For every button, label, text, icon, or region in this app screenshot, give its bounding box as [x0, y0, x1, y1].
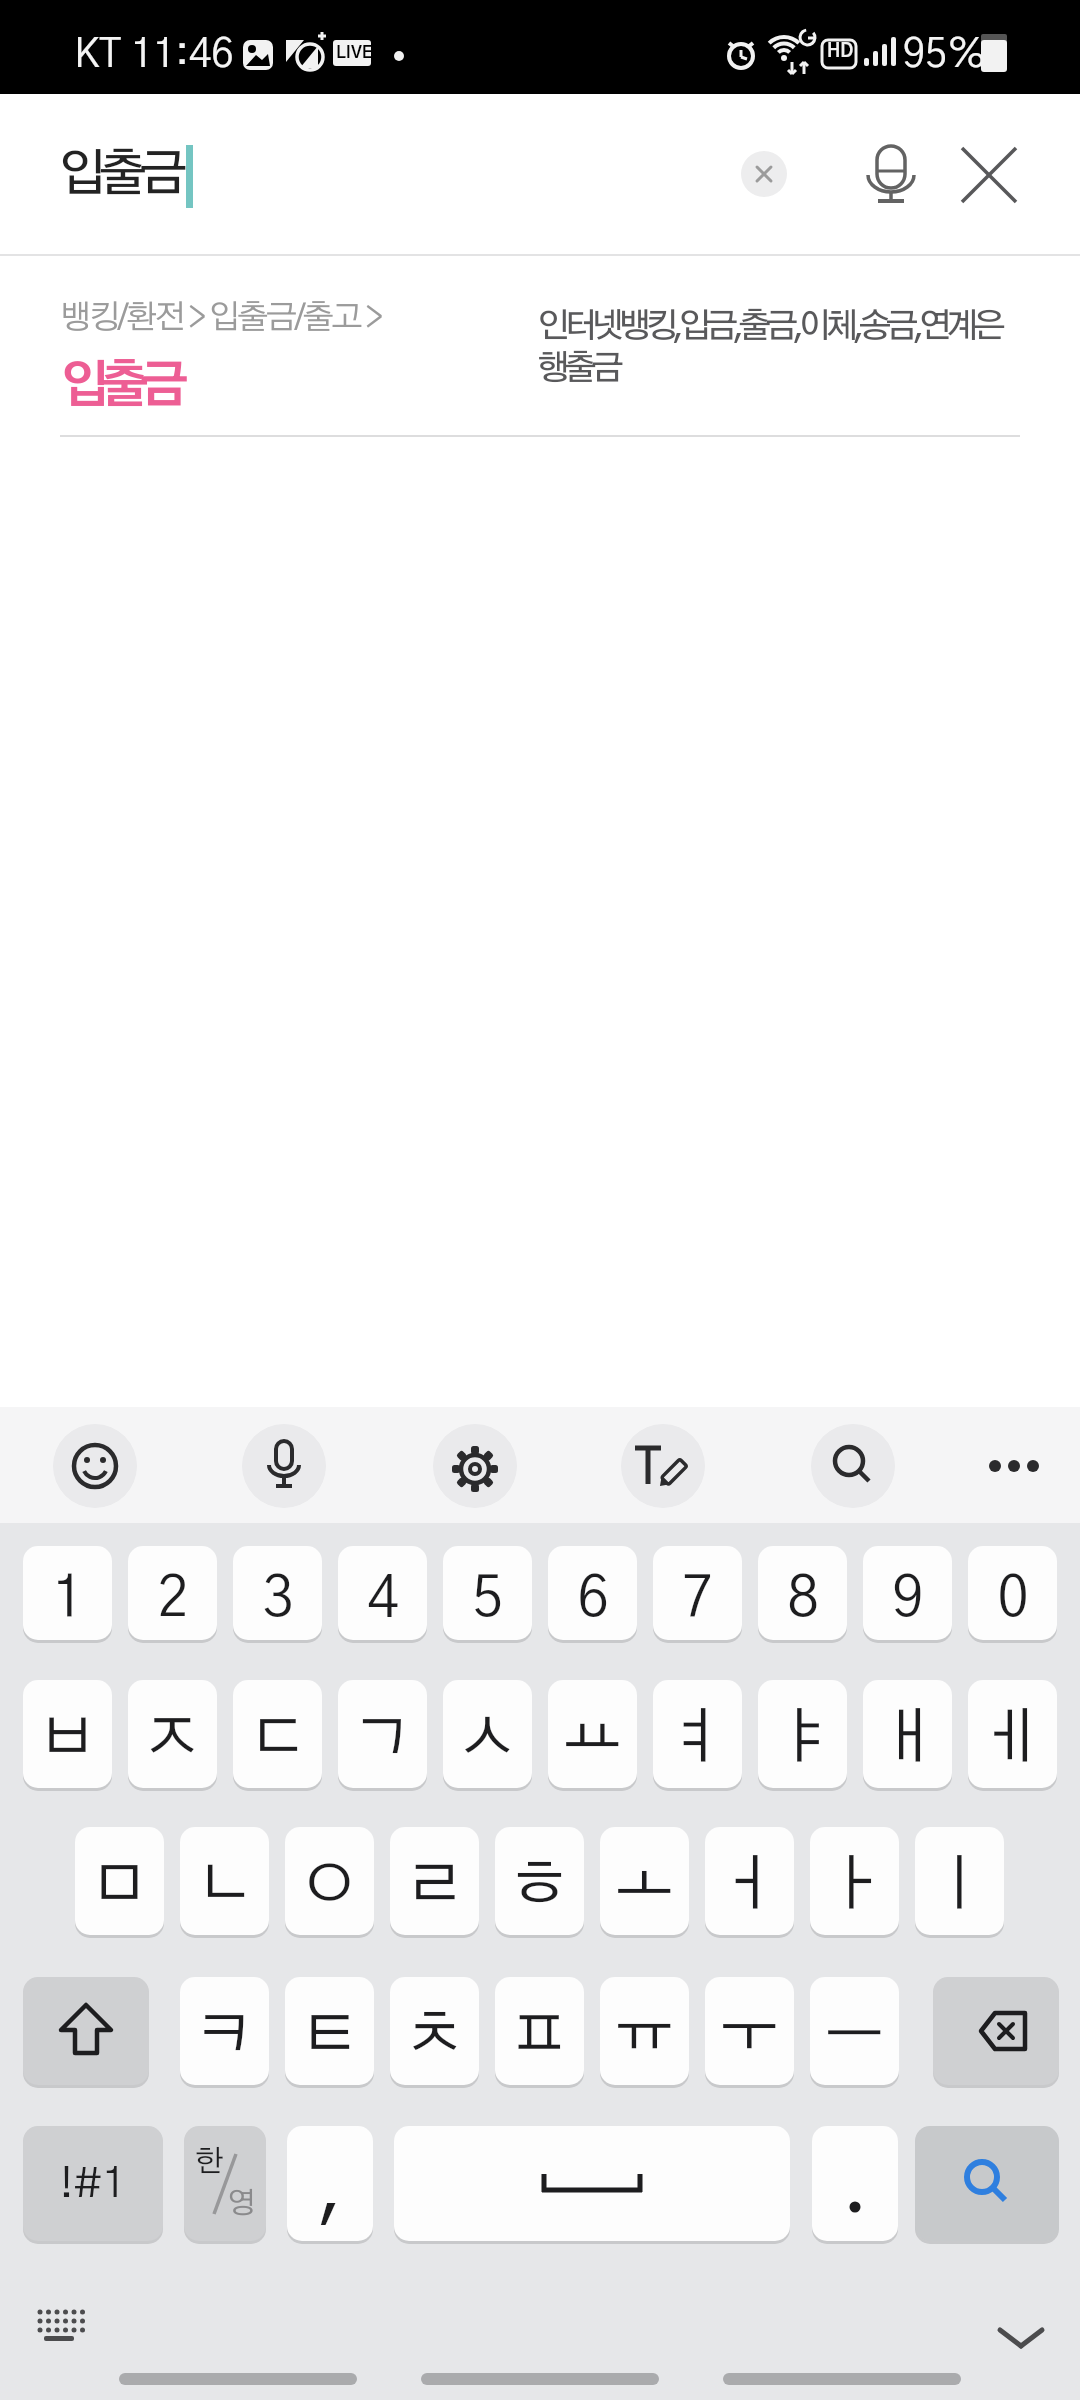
button[interactable]: ㅑ — [758, 1680, 847, 1788]
staticText: !#1 — [60, 2163, 126, 2205]
button[interactable]: 7 — [653, 1546, 742, 1640]
staticText: LIVE — [336, 44, 373, 61]
staticText: ㄱ — [352, 1708, 413, 1769]
staticText: ㅕ — [667, 1708, 728, 1769]
button[interactable] — [812, 2126, 898, 2241]
button[interactable] — [811, 1424, 895, 1508]
staticText: ㄴ — [194, 1855, 255, 1916]
staticText: 6 — [577, 1571, 609, 1627]
button[interactable]: , — [287, 2126, 373, 2241]
staticText: HD — [827, 43, 854, 61]
staticText: 2 — [157, 1571, 189, 1627]
staticText: KT 11:46 — [74, 35, 234, 75]
button[interactable] — [433, 1424, 517, 1508]
button[interactable]: ㅅ — [443, 1680, 532, 1788]
staticText: 입출금 — [58, 150, 180, 200]
staticText: 영 — [227, 2189, 256, 2219]
staticText: ㅏ — [824, 1855, 885, 1916]
staticText: ㅜ — [719, 2005, 780, 2066]
button[interactable] — [915, 2126, 1059, 2241]
button[interactable]: ㄷ — [233, 1680, 322, 1788]
staticText: ㅈ — [142, 1708, 203, 1769]
button[interactable]: 9 — [863, 1546, 952, 1640]
button[interactable] — [53, 1424, 137, 1508]
staticText: ㅛ — [562, 1708, 623, 1769]
staticText: 8 — [787, 1571, 819, 1627]
staticText: ㅣ — [929, 1855, 990, 1916]
button[interactable]: 5 — [443, 1546, 532, 1640]
staticText: 7 — [682, 1571, 714, 1627]
staticText: 1 — [52, 1571, 84, 1627]
button[interactable] — [23, 1977, 149, 2085]
button[interactable]: ㅔ — [968, 1680, 1057, 1788]
staticText: , — [317, 2150, 344, 2228]
button[interactable]: ㅎ — [495, 1827, 584, 1935]
button[interactable]: ㅈ — [128, 1680, 217, 1788]
staticText: ㅍ — [509, 2005, 570, 2066]
button[interactable]: ㅏ — [810, 1827, 899, 1935]
button[interactable]: ㅐ — [863, 1680, 952, 1788]
staticText: ㅊ — [404, 2005, 465, 2066]
button[interactable]: 3 — [233, 1546, 322, 1640]
button[interactable]: ㅜ — [705, 1977, 794, 2085]
staticText: ㅅ — [457, 1708, 518, 1769]
button[interactable]: 뱅킹/환전 > 입출금/출고 > — [0, 256, 1080, 438]
button[interactable]: ㅊ — [390, 1977, 479, 2085]
staticText: ㅁ — [89, 1855, 150, 1916]
staticText: ㄷ — [247, 1708, 308, 1769]
button[interactable]: ㄱ — [338, 1680, 427, 1788]
staticText: ㅔ — [982, 1708, 1043, 1769]
staticText: 인터넷뱅킹,입금,출금,이체,송금,연계은행출금 — [537, 310, 1017, 386]
button[interactable] — [860, 140, 922, 202]
staticText: ㅐ — [877, 1708, 938, 1769]
staticText: 한 — [195, 2147, 224, 2177]
button[interactable]: !#1 — [23, 2126, 163, 2241]
button[interactable]: ㅓ — [705, 1827, 794, 1935]
button[interactable] — [741, 151, 787, 197]
staticText: ㅎ — [509, 1855, 570, 1916]
staticText: ㅂ — [37, 1708, 98, 1769]
button[interactable]: ㅛ — [548, 1680, 637, 1788]
staticText: 0 — [997, 1571, 1029, 1627]
button[interactable]: ㅌ — [285, 1977, 374, 2085]
staticText: 입출금 — [60, 362, 180, 412]
button[interactable] — [962, 148, 1016, 202]
button[interactable]: 0 — [968, 1546, 1057, 1640]
staticText: 4 — [367, 1571, 399, 1627]
button[interactable]: ㅇ — [285, 1827, 374, 1935]
button[interactable]: ㅠ — [600, 1977, 689, 2085]
button[interactable] — [242, 1424, 326, 1508]
button[interactable] — [621, 1424, 705, 1508]
staticText: 3 — [262, 1571, 294, 1627]
button[interactable]: ㅋ — [180, 1977, 269, 2085]
staticText: ㅋ — [194, 2005, 255, 2066]
button[interactable]: 1 — [23, 1546, 112, 1640]
button[interactable]: ㅕ — [653, 1680, 742, 1788]
button[interactable] — [394, 2126, 790, 2241]
button[interactable]: ㄴ — [180, 1827, 269, 1935]
staticText: ㅑ — [772, 1708, 833, 1769]
staticText: 95% — [903, 35, 987, 75]
button[interactable] — [990, 2315, 1050, 2365]
button[interactable]: ㅍ — [495, 1977, 584, 2085]
button[interactable]: ㅣ — [915, 1827, 1004, 1935]
button[interactable]: 6 — [548, 1546, 637, 1640]
staticText: ㅌ — [299, 2005, 360, 2066]
button[interactable] — [30, 2302, 90, 2352]
button[interactable]: 4 — [338, 1546, 427, 1640]
button[interactable]: ㅂ — [23, 1680, 112, 1788]
staticText: 5 — [472, 1571, 504, 1627]
staticText: ㅠ — [614, 2005, 675, 2066]
staticText: ㅡ — [824, 2005, 885, 2066]
button[interactable]: ㅡ — [810, 1977, 899, 2085]
button[interactable] — [933, 1977, 1059, 2085]
staticText: ㅓ — [719, 1855, 780, 1916]
staticText: ㅗ — [614, 1855, 675, 1916]
button[interactable]: ㅗ — [600, 1827, 689, 1935]
staticText: 9 — [892, 1571, 924, 1627]
button[interactable]: 2 — [128, 1546, 217, 1640]
button[interactable]: ㅁ — [75, 1827, 164, 1935]
button[interactable]: 8 — [758, 1546, 847, 1640]
button[interactable]: 한 — [184, 2126, 266, 2241]
button[interactable]: ㄹ — [390, 1827, 479, 1935]
